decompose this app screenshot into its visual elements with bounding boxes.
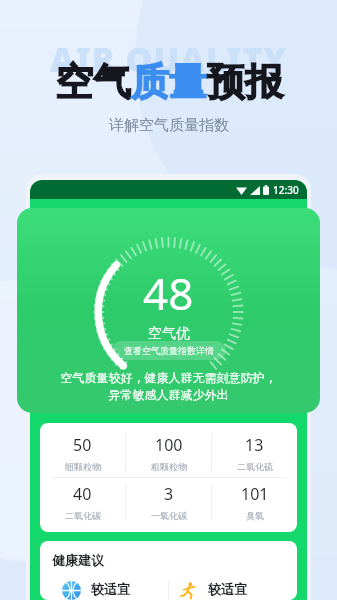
staticText: 48 [143,263,194,323]
staticText: 查看空气质量指数详情 [124,345,214,356]
staticText: 较适宜 [91,581,130,597]
staticText: 粗颗粒物 [151,461,187,472]
button[interactable]: Sports [52,581,168,600]
staticText: 空气优 [148,325,190,343]
staticText: 101 [241,483,269,505]
staticText: 一氧化碳 [151,510,187,521]
staticText: 空气质量较好，健康人群无需刻意防护， 异常敏感人群减少外出 [27,370,310,402]
staticText: 空气质量预报 [55,58,283,106]
staticText: 健康建议 [52,552,104,568]
staticText: 3 [164,483,174,505]
staticText: 臭氧 [246,510,264,521]
button[interactable]: Morning exercise [169,581,285,600]
button[interactable]: 查看空气质量指数详情 [112,341,226,360]
staticText: 详解空气质量指数 [109,116,229,135]
staticText: AIR QUALITY [50,36,288,82]
staticText: 40 [73,483,92,505]
staticText: 细颗粒物 [65,461,101,472]
staticText: 12:30 [273,183,299,197]
staticText: 100 [155,434,183,456]
staticText: 较适宜 [208,581,247,597]
other: Morning exercise [179,581,199,600]
staticText: 二氧化碳 [65,510,101,521]
staticText: 二氧化硫 [237,461,273,472]
staticText: 50 [73,434,92,456]
other: Sports [62,581,82,600]
staticText: 13 [245,434,264,456]
